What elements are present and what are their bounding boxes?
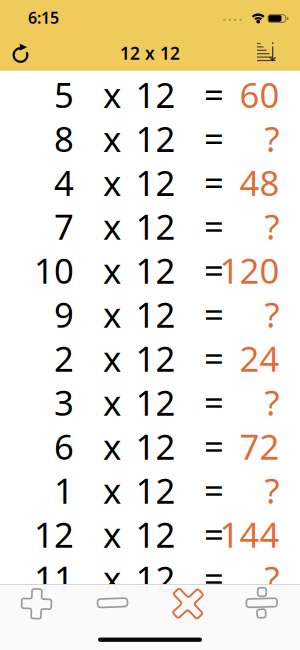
staticText: 10	[34, 247, 74, 293]
button[interactable]: 12	[0, 512, 300, 556]
staticText: =	[204, 511, 224, 557]
staticText: 12	[135, 555, 175, 601]
staticText: 12	[135, 423, 175, 469]
staticText: 12	[135, 467, 175, 513]
staticText: x	[103, 159, 121, 205]
staticText: 4	[54, 159, 74, 205]
staticText: ?	[264, 467, 279, 513]
staticText: ?	[264, 555, 279, 601]
staticText: =	[204, 379, 224, 425]
button[interactable]: 4	[0, 160, 300, 204]
staticText: 144	[219, 511, 279, 557]
staticText: 48	[239, 159, 279, 205]
staticText: 12	[34, 511, 74, 557]
staticText: x	[103, 291, 121, 337]
staticText: ?	[264, 291, 279, 337]
staticText: 12	[135, 511, 175, 557]
staticText: 12	[135, 379, 175, 425]
staticText: x	[103, 203, 121, 249]
staticText: =	[204, 335, 224, 381]
button[interactable]: 1	[0, 468, 300, 512]
staticText: 12	[135, 203, 175, 249]
staticText: 12	[135, 335, 175, 381]
staticText: 2	[54, 335, 74, 381]
button[interactable]: 3	[0, 380, 300, 424]
staticText: x	[103, 379, 121, 425]
staticText: x	[103, 511, 121, 557]
staticText: =	[204, 423, 224, 469]
staticText: =	[204, 291, 224, 337]
staticText: 6	[54, 423, 74, 469]
staticText: 12	[135, 71, 175, 117]
staticText: 8	[54, 115, 74, 161]
button[interactable]: Subtraction	[75, 584, 150, 626]
button[interactable]: 11	[0, 556, 300, 600]
button[interactable]: 8	[0, 116, 300, 160]
staticText: =	[204, 203, 224, 249]
staticText: 12	[135, 115, 175, 161]
button[interactable]: 2	[0, 336, 300, 380]
staticText: 9	[54, 291, 74, 337]
staticText: x	[103, 115, 121, 161]
staticText: x	[103, 335, 121, 381]
staticText: 3	[54, 379, 74, 425]
staticText: x	[103, 467, 121, 513]
staticText: =	[204, 115, 224, 161]
staticText: x	[103, 71, 121, 117]
button[interactable]: 9	[0, 292, 300, 336]
staticText: 12	[135, 159, 175, 205]
staticText: =	[204, 71, 224, 117]
button[interactable]: Addition	[0, 584, 75, 626]
staticText: 12	[135, 291, 175, 337]
button[interactable]: Refresh	[4, 36, 38, 70]
staticText: =	[204, 247, 224, 293]
staticText: 72	[239, 423, 279, 469]
staticText: 60	[239, 71, 279, 117]
staticText: ?	[264, 115, 279, 161]
staticText: =	[204, 467, 224, 513]
staticText: 24	[239, 335, 279, 381]
button[interactable]: Division	[225, 584, 300, 626]
button[interactable]: Multiplication	[150, 584, 225, 626]
staticText: x	[103, 423, 121, 469]
staticText: x	[103, 247, 121, 293]
staticText: 12 x 12	[120, 41, 180, 64]
staticText: 6:15	[28, 7, 59, 28]
button[interactable]: 10	[0, 248, 300, 292]
staticText: 7	[54, 203, 74, 249]
staticText: 120	[219, 247, 279, 293]
staticText: 1	[54, 467, 74, 513]
staticText: 11	[34, 555, 74, 601]
button[interactable]: 5	[0, 72, 300, 116]
button[interactable]: 7	[0, 204, 300, 248]
staticText: 5	[54, 71, 74, 117]
staticText: =	[204, 159, 224, 205]
staticText: x	[103, 555, 121, 601]
button[interactable]: Sorted list	[249, 36, 283, 70]
staticText: 12	[135, 247, 175, 293]
button[interactable]: 6	[0, 424, 300, 468]
staticText: ?	[264, 203, 279, 249]
staticText: =	[204, 555, 224, 601]
staticText: ?	[264, 379, 279, 425]
